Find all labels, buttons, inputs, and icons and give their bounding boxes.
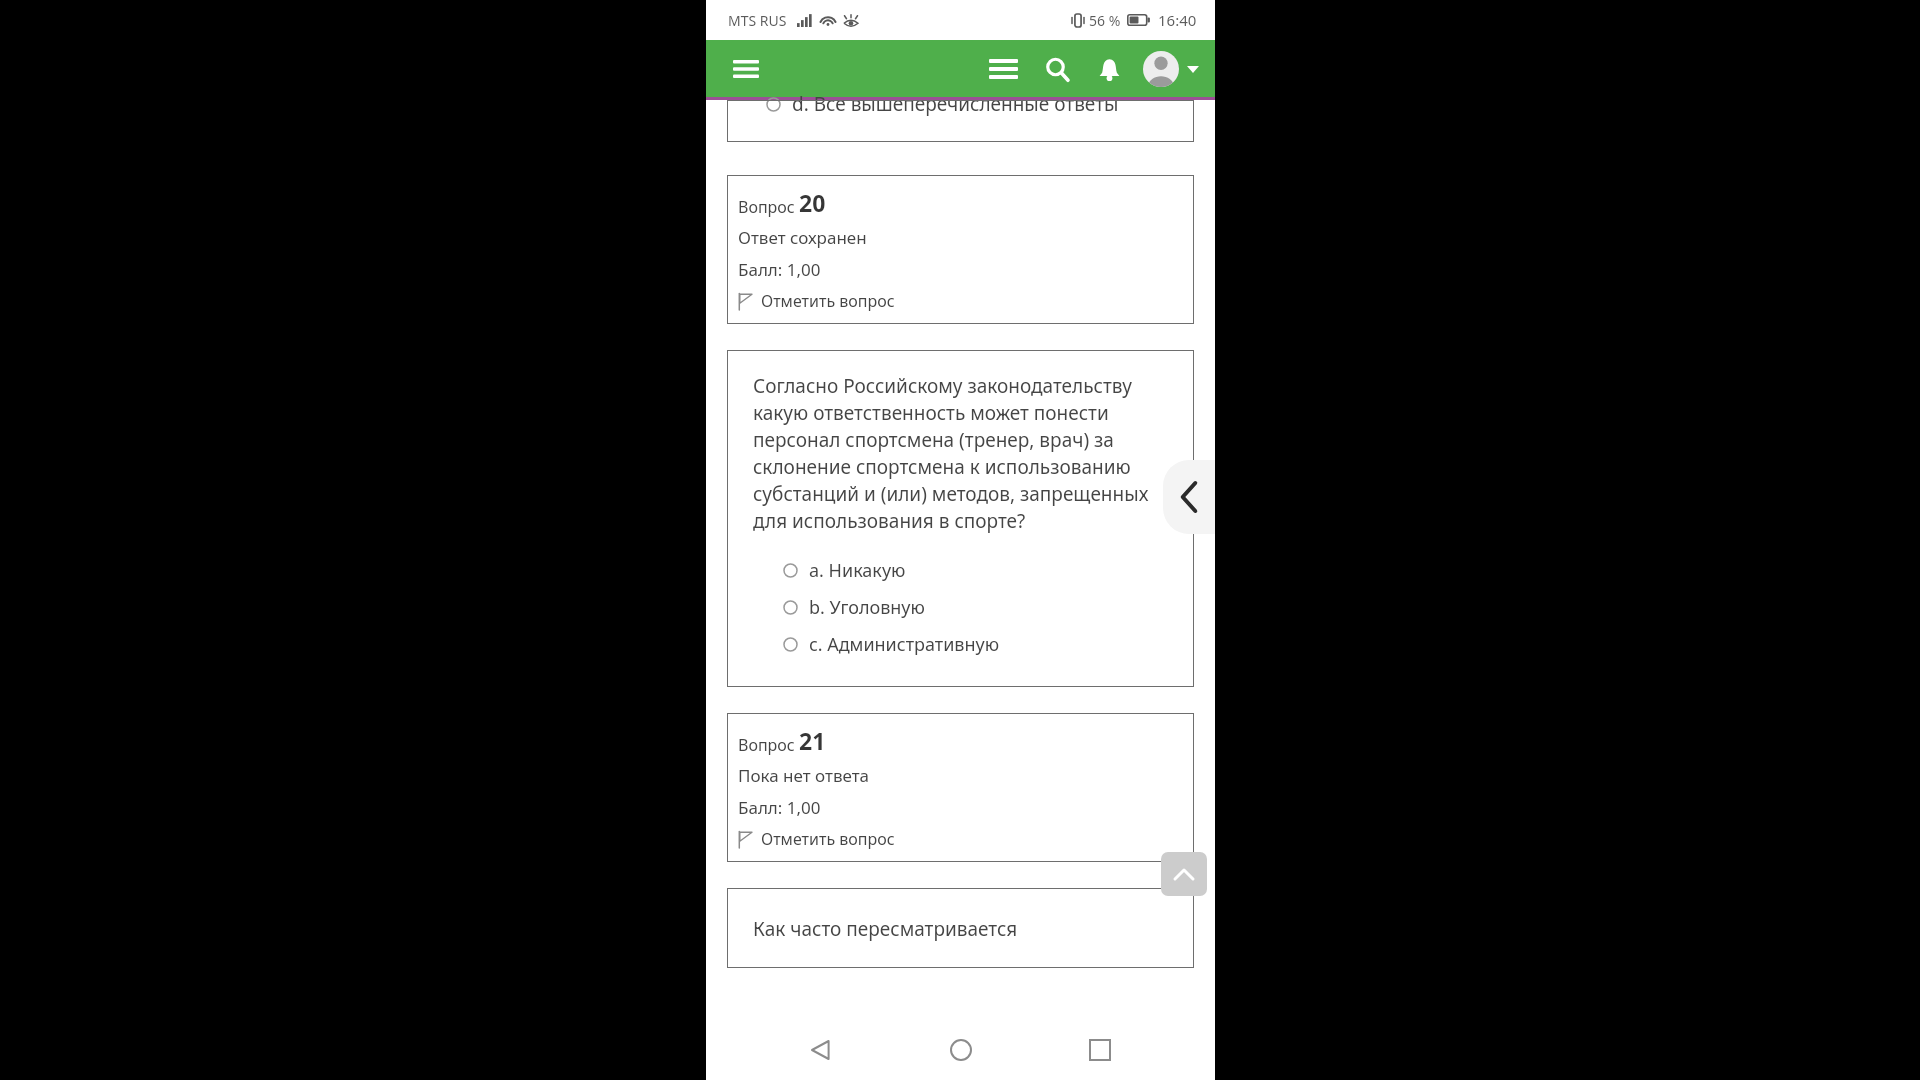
button[interactable]: Согласно Российскому законодательству ка… xyxy=(727,350,1194,687)
button[interactable]: Menu xyxy=(726,49,766,89)
staticText: 56 % xyxy=(1089,11,1121,30)
button[interactable]: Recents xyxy=(1075,1025,1125,1075)
button[interactable]: Back xyxy=(796,1025,846,1075)
button[interactable]: Отметить вопрос xyxy=(738,819,895,850)
staticText: a. Никакую xyxy=(809,558,906,583)
button[interactable]: b. Уголовную xyxy=(753,589,1184,626)
button[interactable]: Как часто пересматривается xyxy=(727,888,1194,968)
button[interactable]: d. Все вышеперечисленные ответы xyxy=(727,100,1194,142)
staticText: Отметить вопрос xyxy=(761,290,895,312)
staticText: Балл: 1,00 xyxy=(738,258,821,281)
button[interactable]: c. Административную xyxy=(753,626,1184,663)
button[interactable]: Search xyxy=(1037,49,1077,89)
staticText: MTS RUS xyxy=(728,11,787,30)
staticText: Балл: 1,00 xyxy=(738,796,821,819)
staticText: 20 xyxy=(799,187,826,218)
staticText: Ответ сохранен xyxy=(738,226,867,249)
button[interactable]: Scroll to top xyxy=(1161,852,1207,896)
staticText: d. Все вышеперечисленные ответы xyxy=(792,91,1119,117)
button[interactable]: Отметить вопрос xyxy=(738,281,895,312)
staticText: Согласно Российскому законодательству ка… xyxy=(753,373,1184,534)
button[interactable]: Вопрос xyxy=(727,713,1194,862)
button[interactable]: Navigation xyxy=(983,49,1023,89)
staticText: Отметить вопрос xyxy=(761,828,895,850)
staticText: Вопрос xyxy=(738,196,799,218)
staticText: b. Уголовную xyxy=(809,595,925,620)
staticText: c. Административную xyxy=(809,632,1000,657)
staticText: 21 xyxy=(799,725,826,756)
staticText: Как часто пересматривается xyxy=(753,916,1018,942)
button[interactable]: Account xyxy=(1141,51,1201,87)
staticText: Пока нет ответа xyxy=(738,764,870,787)
button[interactable]: a. Никакую xyxy=(753,552,1184,589)
button[interactable]: Notifications xyxy=(1089,49,1129,89)
staticText: 16:40 xyxy=(1158,10,1197,30)
staticText: Вопрос xyxy=(738,734,799,756)
button[interactable]: Home xyxy=(936,1025,986,1075)
button[interactable]: Вопрос xyxy=(727,175,1194,324)
button[interactable]: Previous page xyxy=(1163,460,1215,534)
